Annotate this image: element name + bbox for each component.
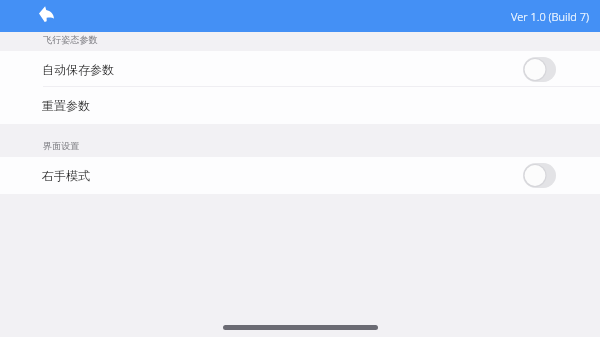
button[interactable]: Toggle [523, 57, 556, 82]
button[interactable]: 自动保存参数 [0, 51, 600, 87]
button[interactable]: 重置参数 [0, 87, 600, 124]
staticText: 重置参数 [42, 98, 90, 113]
staticText: 右手模式 [42, 168, 90, 183]
button[interactable]: Toggle [523, 163, 556, 188]
staticText: Ver 1.0 (Build 7) [511, 9, 589, 24]
staticText: 飞行姿态参数 [43, 34, 98, 45]
staticText: 界面设置 [43, 140, 80, 151]
button[interactable]: 右手模式 [0, 157, 600, 194]
button[interactable]: Back [31, 0, 61, 32]
staticText: 自动保存参数 [42, 62, 114, 77]
